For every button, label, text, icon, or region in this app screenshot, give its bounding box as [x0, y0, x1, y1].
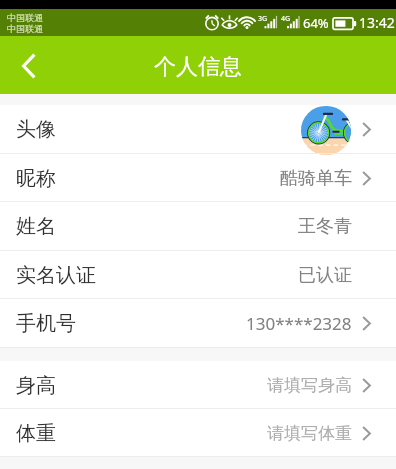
button[interactable]: 头像 — [0, 105, 396, 154]
staticText: 身高 — [16, 373, 56, 398]
button[interactable]: 手机号 — [0, 299, 396, 348]
staticText: 头像 — [16, 117, 56, 142]
button[interactable]: 体重 — [0, 409, 396, 457]
staticText: 个人信息 — [154, 53, 242, 81]
staticText: 姓名 — [16, 214, 56, 239]
staticText: 王冬青 — [298, 215, 352, 238]
button[interactable]: 身高 — [0, 361, 396, 409]
button[interactable]: 姓名 — [0, 202, 396, 251]
staticText: 130****2328 — [246, 312, 352, 335]
button[interactable]: Back — [0, 36, 56, 94]
staticText: 请填写体重 — [267, 423, 352, 444]
staticText: 体重 — [16, 421, 56, 446]
staticText: 手机号 — [16, 311, 76, 336]
staticText: 中国联通 — [7, 23, 43, 34]
staticText: 昵称 — [16, 166, 56, 191]
staticText: 64% — [303, 14, 329, 32]
button[interactable]: 昵称 — [0, 154, 396, 203]
staticText: 13:42 — [359, 13, 395, 32]
staticText: 请填写身高 — [267, 375, 352, 396]
button[interactable]: 实名认证 — [0, 251, 396, 300]
staticText: 实名认证 — [16, 263, 96, 288]
staticText: 中国联通 — [7, 12, 43, 23]
staticText: 4G — [281, 14, 291, 24]
staticText: 3G — [258, 14, 268, 24]
staticText: 已认证 — [298, 264, 352, 287]
staticText: 酷骑单车 — [280, 167, 352, 190]
